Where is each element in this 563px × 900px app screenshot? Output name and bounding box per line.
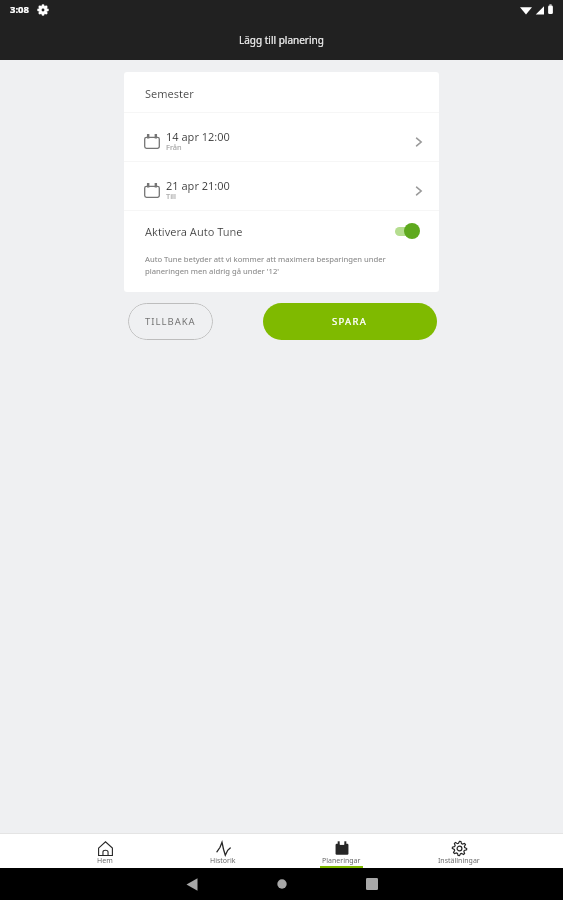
button[interactable]: 14 apr 12:00 <box>124 113 439 161</box>
button[interactable]: Recents <box>354 868 390 900</box>
button[interactable]: Planeringar <box>282 834 400 868</box>
staticText: 14 apr 12:00 <box>166 129 230 144</box>
button[interactable]: Hem <box>45 834 164 868</box>
button[interactable]: SPARA <box>263 303 437 340</box>
staticText: 3:08 <box>10 3 29 16</box>
staticText: Lägg till planering <box>239 33 324 47</box>
button[interactable]: Aktivera Auto Tune <box>124 211 439 248</box>
button[interactable]: Historik <box>164 834 282 868</box>
staticText: Till <box>166 191 176 201</box>
button[interactable]: Home <box>264 868 300 900</box>
staticText: Aktivera Auto Tune <box>145 224 395 239</box>
staticText: Från <box>166 142 182 152</box>
staticText: Auto Tune betyder att vi kommer att maxi… <box>145 254 416 276</box>
staticText: Planeringar <box>322 856 361 866</box>
staticText: Semester <box>145 86 194 101</box>
staticText: TILLBAKA <box>145 315 196 328</box>
button[interactable]: TILLBAKA <box>128 303 213 340</box>
staticText: Hem <box>97 856 113 866</box>
button[interactable]: Inställningar <box>400 834 518 868</box>
button[interactable]: 21 apr 21:00 <box>124 162 439 210</box>
staticText: 21 apr 21:00 <box>166 178 230 193</box>
staticText: Historik <box>210 856 236 866</box>
staticText: Inställningar <box>438 856 480 866</box>
button[interactable]: Back <box>174 868 210 900</box>
staticText: SPARA <box>332 315 368 328</box>
